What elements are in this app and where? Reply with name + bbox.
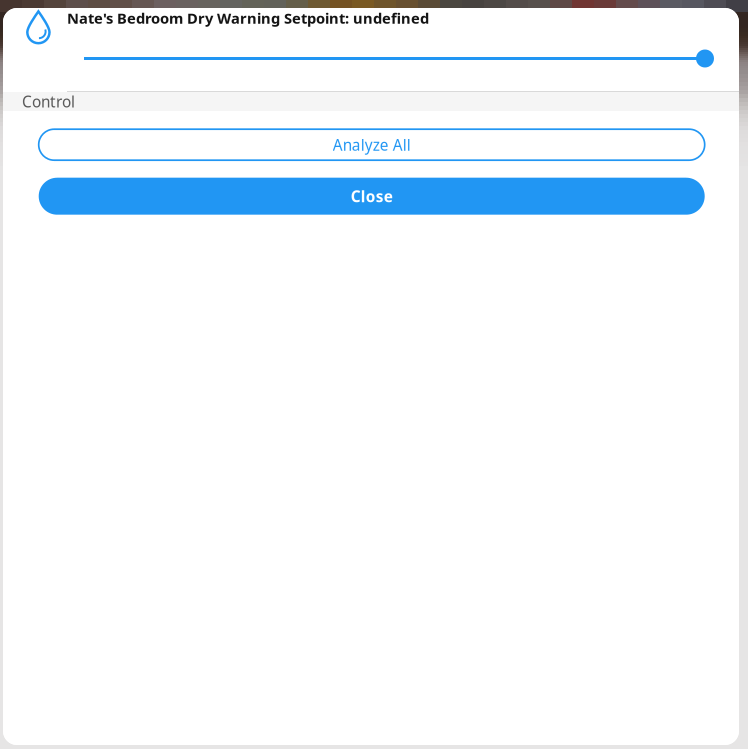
staticText: Analyze All: [333, 134, 411, 155]
staticText: Close: [351, 186, 393, 207]
staticText: Control: [22, 91, 75, 112]
staticText: Nate's Bedroom Dry Warning Setpoint: und…: [67, 8, 429, 28]
button[interactable]: Close: [39, 178, 705, 215]
button[interactable]: Analyze All: [39, 129, 705, 160]
